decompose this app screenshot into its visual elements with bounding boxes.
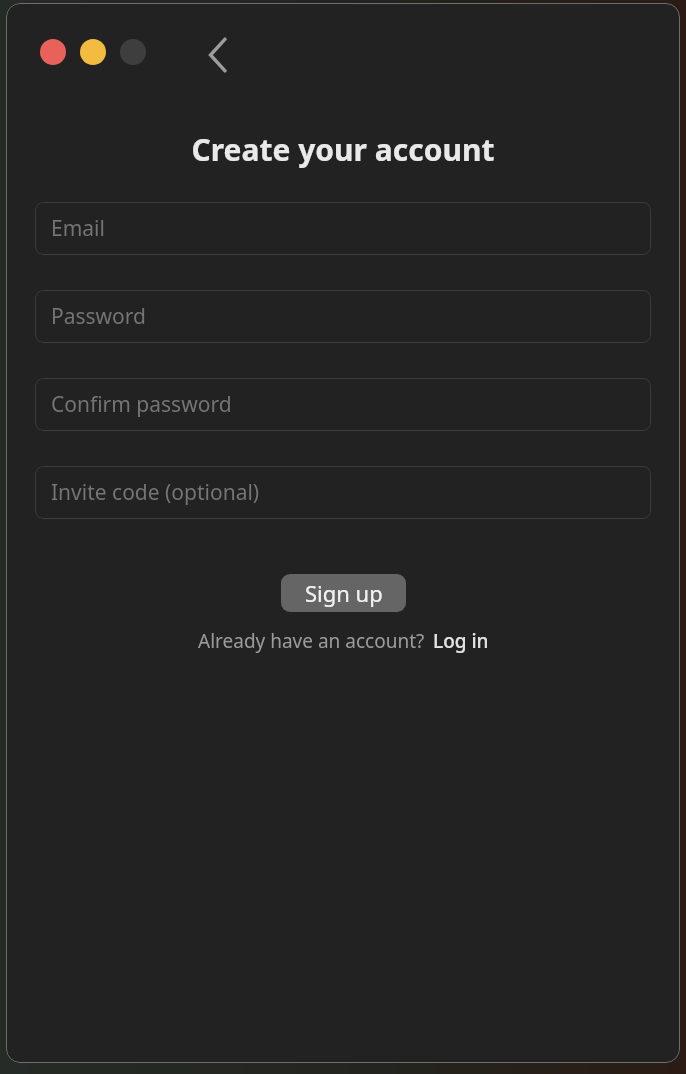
staticText: Create your account (6, 129, 680, 170)
staticText: Confirm password (51, 390, 232, 419)
button[interactable]: Sign up (281, 574, 406, 612)
staticText: Log in (433, 628, 489, 654)
staticText: Sign up (305, 578, 383, 608)
staticText: Invite code (optional) (51, 478, 260, 507)
staticText: Password (51, 302, 146, 331)
button[interactable]: Email (35, 202, 651, 255)
button[interactable]: Maximize window (120, 39, 146, 65)
button[interactable]: Confirm password (35, 378, 651, 431)
button[interactable]: Log in (433, 628, 489, 654)
button[interactable]: Minimize window (80, 39, 106, 65)
button[interactable]: Invite code (optional) (35, 466, 651, 519)
button[interactable]: Close window (40, 39, 66, 65)
staticText: Already have an account? (198, 628, 425, 654)
button[interactable]: Back (192, 29, 244, 81)
button[interactable]: Password (35, 290, 651, 343)
staticText: Email (51, 214, 105, 243)
